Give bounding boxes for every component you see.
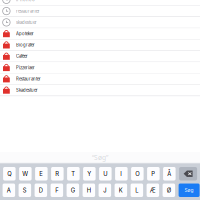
button[interactable]: J bbox=[99, 183, 111, 197]
staticText: R bbox=[55, 170, 59, 177]
staticText: K bbox=[119, 187, 123, 194]
button[interactable]: E bbox=[35, 167, 48, 180]
button[interactable]: G bbox=[67, 183, 79, 197]
button[interactable]: R bbox=[51, 167, 64, 180]
staticText: Apoteker bbox=[16, 31, 34, 36]
staticText: U bbox=[103, 170, 107, 177]
button[interactable]: restauranter bbox=[0, 6, 200, 17]
button[interactable]: Restauranter bbox=[0, 73, 200, 85]
button[interactable]: Y bbox=[83, 167, 96, 180]
button[interactable]: P bbox=[147, 167, 160, 180]
button[interactable]: U bbox=[99, 167, 112, 180]
staticText: J bbox=[103, 187, 106, 194]
staticText: T bbox=[71, 170, 75, 177]
staticText: iPhone 6 bbox=[16, 0, 35, 2]
button[interactable]: Ø bbox=[163, 183, 175, 197]
button[interactable]: Å bbox=[163, 167, 176, 180]
button[interactable]: Skadestuer bbox=[0, 85, 200, 96]
button[interactable]: Pizzeriaer bbox=[0, 62, 200, 73]
staticText: restauranter bbox=[16, 8, 40, 14]
staticText: Restauranter bbox=[16, 76, 41, 81]
staticText: “Søg” bbox=[92, 153, 108, 162]
button[interactable]: Søg bbox=[179, 183, 200, 197]
button[interactable]: W bbox=[19, 167, 32, 180]
staticText: I bbox=[120, 170, 122, 177]
staticText: G bbox=[71, 187, 75, 194]
staticText: Caféer bbox=[16, 54, 28, 59]
staticText: Søg bbox=[185, 187, 194, 193]
button[interactable]: Q bbox=[3, 167, 16, 180]
button[interactable]: O bbox=[131, 167, 144, 180]
staticText: Å bbox=[167, 170, 171, 177]
button[interactable]: D bbox=[35, 183, 47, 197]
staticText: Q bbox=[7, 170, 11, 177]
button[interactable]: F bbox=[51, 183, 63, 197]
staticText: F bbox=[55, 187, 58, 194]
button[interactable]: skadestuer bbox=[0, 17, 200, 28]
staticText: Ø bbox=[167, 187, 171, 194]
button[interactable]: “Søg” bbox=[0, 152, 200, 163]
staticText: H bbox=[87, 187, 91, 194]
staticText: Æ bbox=[150, 187, 156, 194]
staticText: Skadestuer bbox=[16, 88, 38, 93]
button[interactable]: Delete bbox=[179, 167, 197, 180]
button[interactable]: Æ bbox=[147, 183, 159, 197]
staticText: W bbox=[22, 170, 28, 177]
staticText: A bbox=[7, 187, 11, 194]
staticText: O bbox=[135, 170, 139, 177]
staticText: D bbox=[39, 187, 43, 194]
staticText: L bbox=[135, 187, 138, 194]
button[interactable]: iPhone 6 bbox=[0, 0, 200, 6]
button[interactable]: Biografer bbox=[0, 40, 200, 51]
staticText: P bbox=[151, 170, 155, 177]
staticText: Y bbox=[87, 170, 91, 177]
staticText: skadestuer bbox=[16, 20, 37, 25]
button[interactable]: L bbox=[131, 183, 143, 197]
staticText: Pizzeriaer bbox=[16, 65, 35, 70]
button[interactable]: S bbox=[19, 183, 31, 197]
staticText: Biografer bbox=[16, 42, 35, 48]
button[interactable]: Apoteker bbox=[0, 28, 200, 40]
staticText: S bbox=[23, 187, 27, 194]
button[interactable]: T bbox=[67, 167, 80, 180]
staticText: E bbox=[39, 170, 43, 177]
button[interactable]: Caféer bbox=[0, 51, 200, 62]
button[interactable]: A bbox=[3, 183, 15, 197]
button[interactable]: K bbox=[115, 183, 127, 197]
button[interactable]: I bbox=[115, 167, 128, 180]
button[interactable]: H bbox=[83, 183, 95, 197]
